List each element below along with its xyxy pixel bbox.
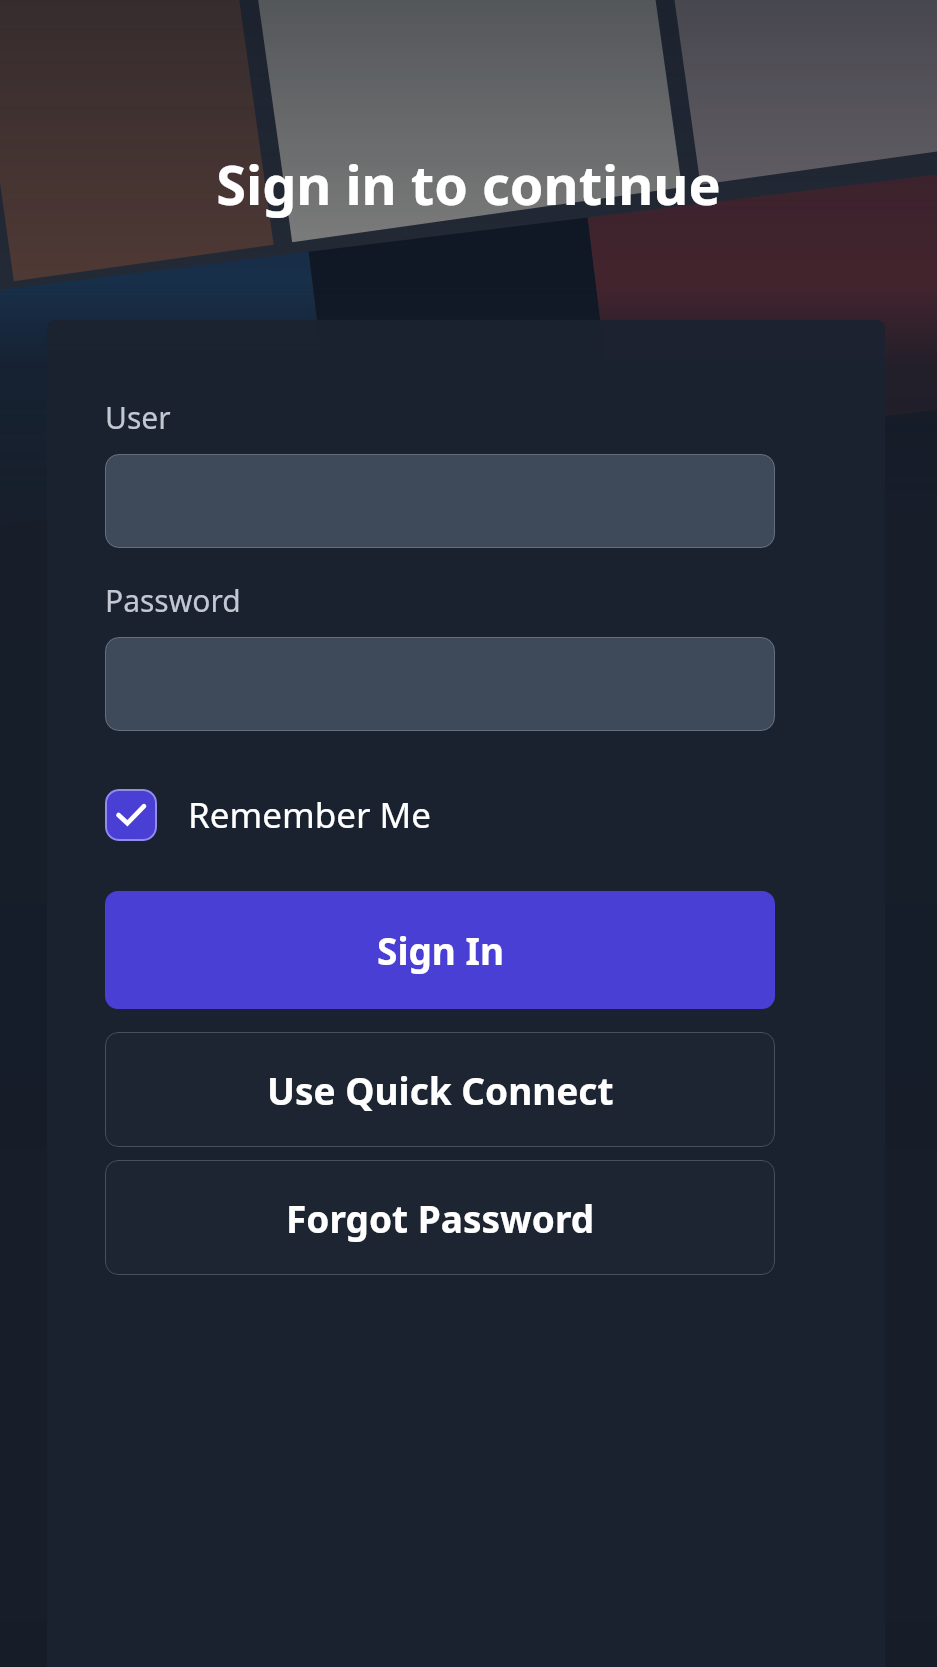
button[interactable]: Use Quick Connect xyxy=(105,1032,775,1147)
staticText: Sign in to continue xyxy=(0,147,937,221)
button[interactable] xyxy=(105,454,775,548)
staticText: Password xyxy=(105,580,241,621)
staticText: Remember Me xyxy=(188,791,432,839)
staticText: Use Quick Connect xyxy=(267,1065,614,1115)
staticText: User xyxy=(105,397,171,438)
button[interactable] xyxy=(105,637,775,731)
button[interactable]: Sign In xyxy=(105,891,775,1009)
staticText: Forgot Password xyxy=(286,1193,595,1243)
other: Remember me checkbox xyxy=(105,789,157,841)
button[interactable]: Remember me checkbox xyxy=(105,789,775,841)
button[interactable]: Forgot Password xyxy=(105,1160,775,1275)
staticText: Sign In xyxy=(377,925,504,975)
